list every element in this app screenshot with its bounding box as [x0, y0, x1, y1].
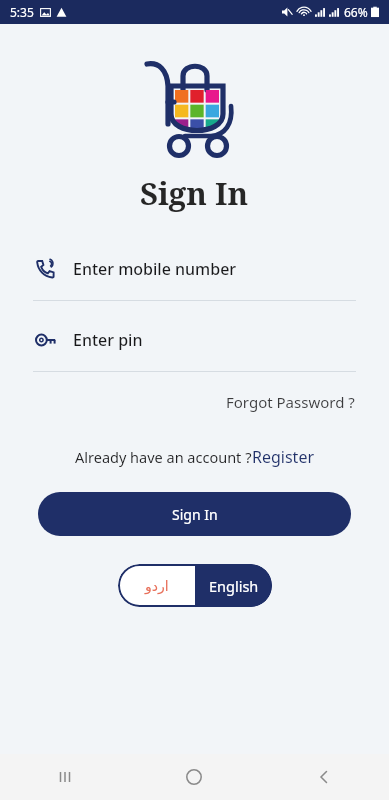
other: Pin [34, 328, 58, 352]
staticText: اردو [145, 578, 169, 594]
staticText: English [209, 576, 259, 596]
button[interactable]: Register [252, 446, 315, 468]
other: Mobile number [35, 258, 57, 280]
button[interactable]: اردو [118, 564, 195, 607]
button[interactable]: Recent apps [0, 754, 129, 800]
staticText: Sign In [140, 172, 249, 214]
button[interactable]: Sign In [38, 492, 351, 536]
other: App logo [143, 50, 247, 162]
button[interactable]: Home [129, 754, 259, 800]
button[interactable]: Forgot Password ? [222, 388, 359, 416]
staticText: Enter mobile number [73, 258, 237, 280]
button[interactable]: Pin [33, 321, 356, 372]
staticText: Sign In [172, 505, 218, 524]
button[interactable]: Back [259, 754, 389, 800]
staticText: 5:35 [10, 4, 34, 20]
button[interactable]: English [195, 564, 272, 607]
staticText: Forgot Password ? [226, 392, 355, 412]
button[interactable]: Mobile number [33, 250, 356, 301]
staticText: Already have an account ? [75, 447, 252, 467]
staticText: Register [252, 446, 315, 468]
staticText: Enter pin [73, 329, 143, 351]
staticText: 66% [344, 4, 368, 20]
